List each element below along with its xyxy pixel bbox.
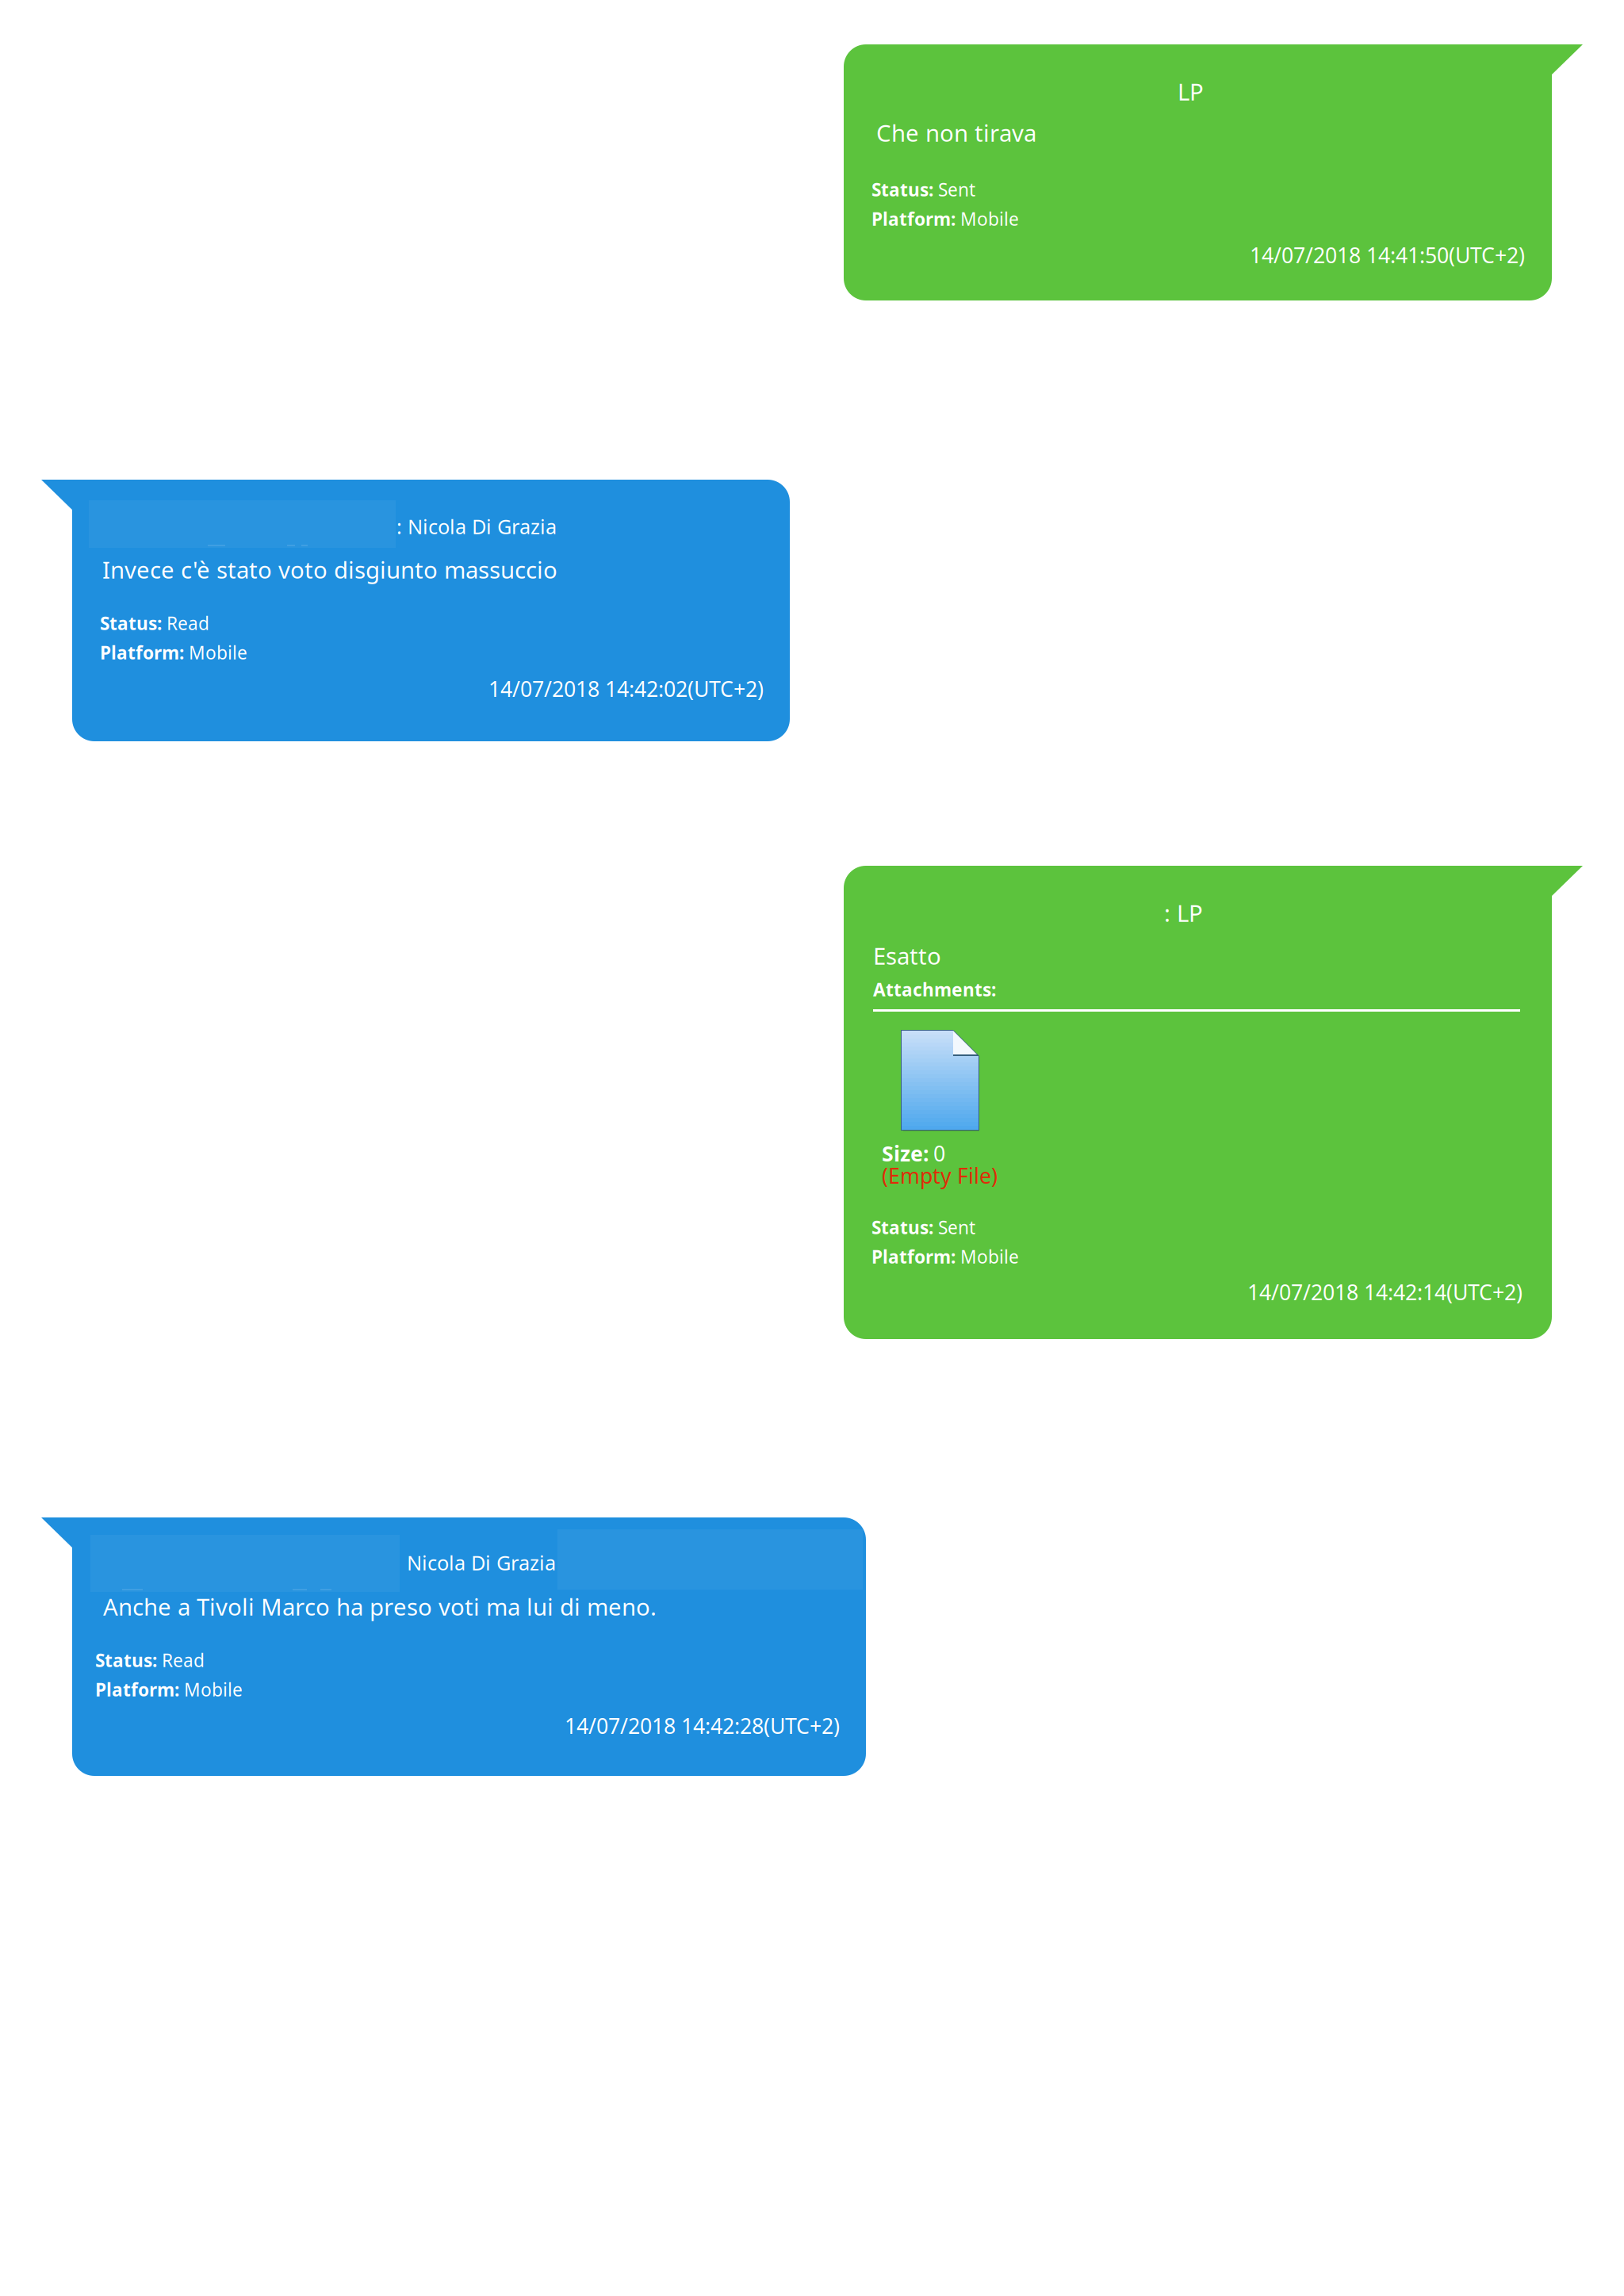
- staticText: Sent: [938, 1215, 975, 1239]
- staticText: Read: [162, 1648, 205, 1672]
- button[interactable]: Nicola Di Grazia: [41, 1517, 866, 1776]
- staticText: Size:: [882, 1139, 929, 1167]
- staticText: Che non tirava: [876, 117, 1036, 148]
- staticText: Sent: [938, 178, 975, 201]
- staticText: Platform:: [871, 1245, 956, 1269]
- button[interactable]: : LP: [844, 866, 1583, 1339]
- button[interactable]: LP: [844, 44, 1583, 300]
- staticText: Platform:: [95, 1678, 179, 1701]
- staticText: Read: [167, 611, 209, 635]
- button[interactable]: : Nicola Di Grazia: [41, 480, 790, 741]
- staticText: 14/07/2018 14:42:14(UTC+2): [1247, 1278, 1522, 1306]
- staticText: Status:: [871, 178, 933, 201]
- staticText: Anche a Tivoli Marco ha preso voti ma lu…: [103, 1591, 657, 1622]
- staticText: Platform:: [100, 641, 184, 664]
- staticText: : LP: [1164, 897, 1203, 928]
- staticText: Status:: [871, 1215, 933, 1239]
- staticText: 14/07/2018 14:42:28(UTC+2): [565, 1712, 840, 1740]
- staticText: 0: [933, 1139, 945, 1167]
- staticText: Platform:: [871, 207, 956, 231]
- staticText: Mobile: [184, 1678, 243, 1701]
- staticText: Invece c'è stato voto disgiunto massucci…: [102, 554, 557, 585]
- staticText: LP: [1178, 76, 1204, 107]
- staticText: Status:: [100, 611, 162, 635]
- staticText: : Nicola Di Grazia: [396, 513, 557, 540]
- staticText: (Empty File): [882, 1161, 998, 1190]
- staticText: Attachments:: [873, 978, 996, 1001]
- staticText: Status:: [95, 1648, 157, 1672]
- staticText: 14/07/2018 14:41:50(UTC+2): [1250, 241, 1525, 269]
- staticText: Mobile: [960, 1245, 1019, 1269]
- staticText: Mobile: [960, 207, 1019, 231]
- staticText: Esatto: [873, 940, 941, 971]
- staticText: Nicola Di Grazia: [407, 1549, 556, 1576]
- staticText: 14/07/2018 14:42:02(UTC+2): [488, 675, 764, 703]
- staticText: Mobile: [189, 641, 247, 664]
